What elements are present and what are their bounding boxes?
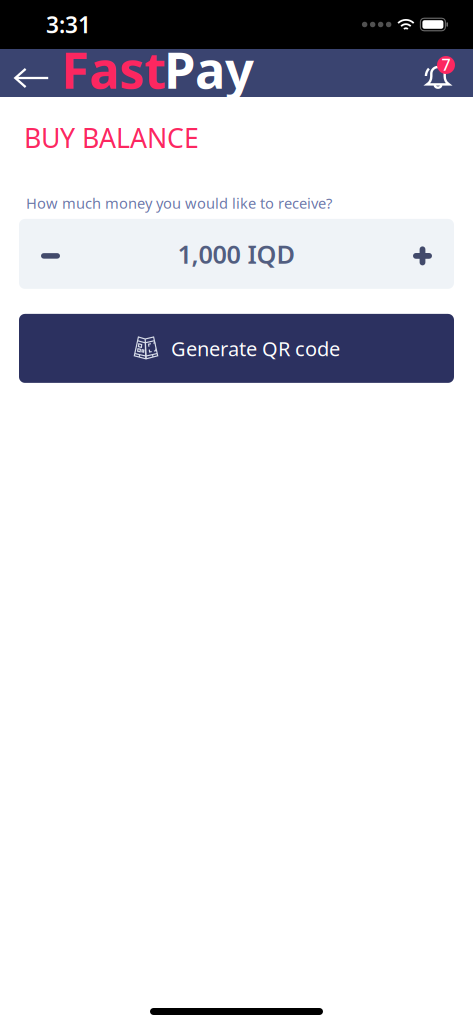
staticText: 7 <box>441 54 450 75</box>
staticText: 1,000 IQD <box>177 237 295 271</box>
staticText: 3:31 <box>46 9 91 39</box>
button[interactable]: Back <box>0 49 58 97</box>
staticText: Generate QR code <box>171 335 340 362</box>
button[interactable]: Generate QR code <box>19 314 454 383</box>
staticText: BUY BALANCE <box>24 120 199 155</box>
staticText: Fast <box>61 35 166 103</box>
button[interactable]: Increase amount <box>391 219 454 289</box>
button[interactable]: Notifications <box>425 51 473 95</box>
staticText: How much money you would like to receive… <box>26 193 332 213</box>
staticText: Pay <box>164 35 254 103</box>
button[interactable]: Decrease amount <box>19 219 82 289</box>
